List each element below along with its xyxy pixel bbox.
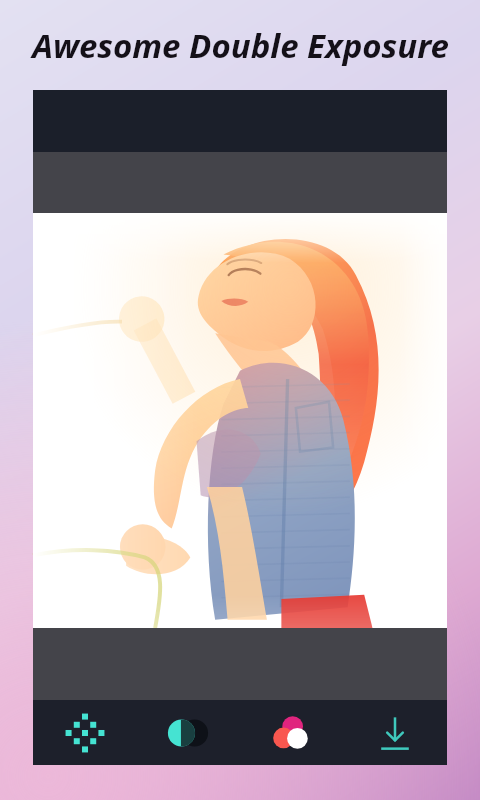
button[interactable]: Mosaic effect: [33, 700, 136, 765]
button[interactable]: Save image: [343, 700, 447, 765]
staticText: Awesome Double Exposure: [32, 23, 449, 68]
button[interactable]: Blend modes: [136, 700, 239, 765]
button[interactable]: Color filters: [239, 700, 343, 765]
